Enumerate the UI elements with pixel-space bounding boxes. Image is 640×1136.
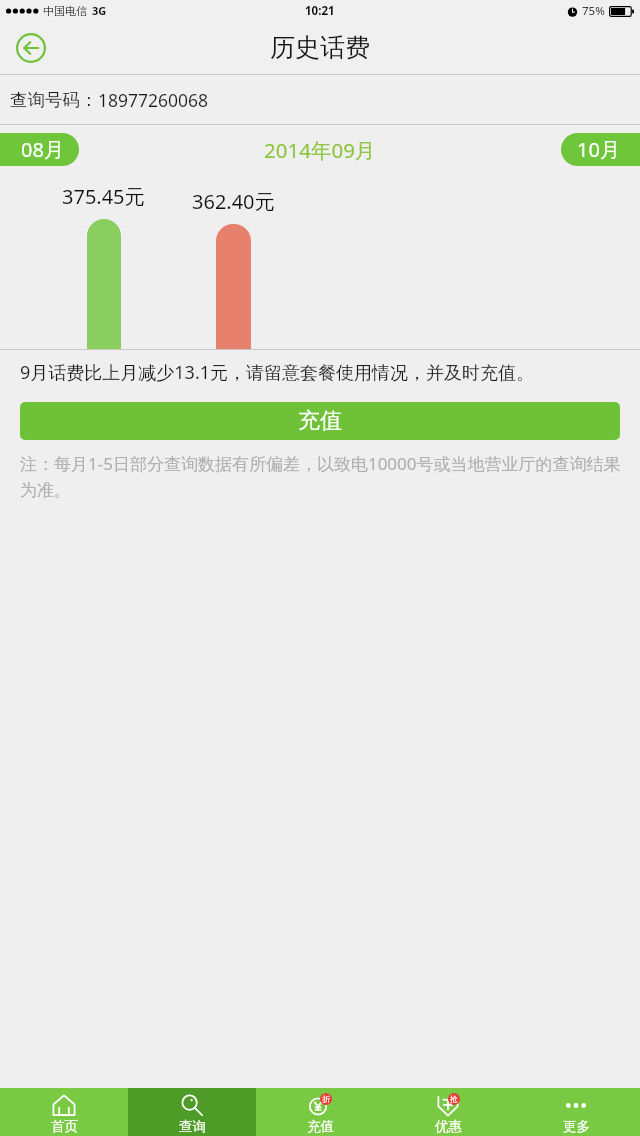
button[interactable]: 充值 xyxy=(20,402,620,440)
button[interactable]: 首页 xyxy=(0,1088,128,1136)
button[interactable]: 10月 xyxy=(561,133,640,166)
staticText: 注：每月1-5日部分查询数据有所偏差，以致电10000号或当地营业厅的查询结果为… xyxy=(20,452,624,501)
staticText: 查询号码： xyxy=(10,89,98,111)
staticText: 18977260068 xyxy=(98,88,209,112)
staticText: 充值 xyxy=(307,1118,334,1135)
staticText: 3G xyxy=(92,3,107,18)
button[interactable]: 更多 xyxy=(512,1088,640,1136)
staticText: 10:21 xyxy=(305,3,335,19)
staticText: 折 xyxy=(322,1094,330,1104)
button[interactable]: 抢 xyxy=(384,1088,512,1136)
staticText: 10月 xyxy=(577,136,620,163)
staticText: 9月话费比上月减少13.1元，请留意套餐使用情况，并及时充值。 xyxy=(20,360,535,385)
staticText: 08月 xyxy=(21,136,64,163)
staticText: 优惠 xyxy=(435,1118,462,1135)
staticText: 362.40元 xyxy=(192,188,275,215)
button[interactable]: 08月 xyxy=(0,133,79,166)
staticText: 375.45元 xyxy=(62,183,145,210)
staticText: 充值 xyxy=(298,407,342,435)
staticText: 抢 xyxy=(450,1094,458,1104)
staticText: 75% xyxy=(582,3,605,19)
staticText: 历史话费 xyxy=(270,32,370,63)
staticText: 查询 xyxy=(179,1118,206,1135)
button[interactable]: 查询 xyxy=(128,1088,256,1136)
button[interactable]: Back xyxy=(16,33,46,63)
staticText: 2014年09月 xyxy=(264,136,376,164)
staticText: 更多 xyxy=(563,1118,590,1135)
button[interactable]: 折 xyxy=(256,1088,384,1136)
staticText: 首页 xyxy=(51,1118,78,1135)
staticText: 中国电信 xyxy=(43,4,87,18)
